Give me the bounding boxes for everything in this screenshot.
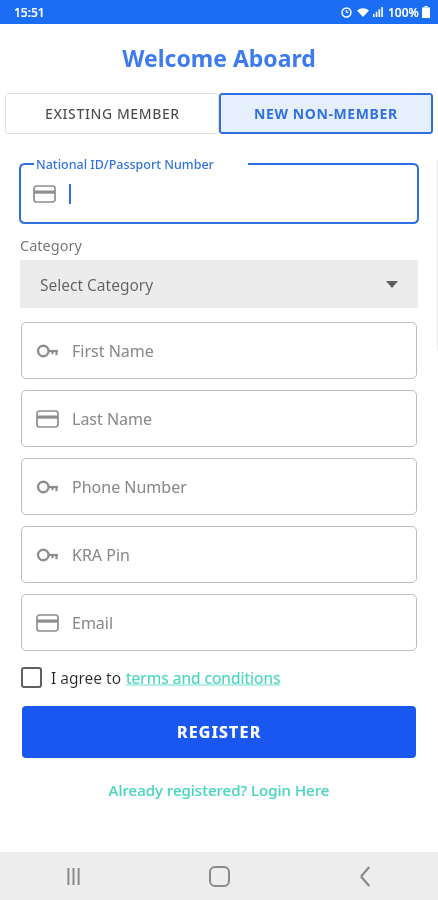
staticText: NEW NON-MEMBER: [254, 104, 398, 123]
button[interactable]: Last Name: [21, 390, 417, 447]
button[interactable]: REGISTER: [22, 706, 416, 758]
staticText: REGISTER: [177, 721, 262, 743]
staticText: Email: [72, 612, 114, 634]
staticText: Phone Number: [72, 476, 187, 498]
staticText: First Name: [72, 340, 154, 362]
staticText: Welcome Aboard: [0, 42, 438, 73]
staticText: Select Category: [40, 274, 154, 295]
button[interactable]: I agree to: [22, 667, 281, 688]
button[interactable]: First Name: [21, 322, 417, 379]
button[interactable]: Select Category: [20, 260, 418, 308]
staticText: 100%: [388, 4, 419, 20]
button[interactable]: EXISTING MEMBER: [5, 93, 219, 134]
button[interactable]: Already registered? Login Here: [0, 780, 438, 800]
button[interactable]: National ID/Passport Number: [20, 155, 418, 223]
button[interactable]: terms and conditions: [126, 667, 281, 688]
button[interactable]: Back: [292, 852, 438, 900]
staticText: KRA Pin: [72, 544, 130, 566]
button[interactable]: NEW NON-MEMBER: [219, 93, 433, 134]
staticText: Category: [20, 235, 82, 255]
button[interactable]: Recent apps: [0, 852, 146, 900]
staticText: 15:51: [14, 4, 45, 20]
staticText: Last Name: [72, 408, 153, 430]
staticText: National ID/Passport Number: [36, 156, 214, 173]
button[interactable]: Phone Number: [21, 458, 417, 515]
button[interactable]: KRA Pin: [21, 526, 417, 583]
button[interactable]: Home: [146, 852, 292, 900]
staticText: EXISTING MEMBER: [45, 104, 180, 123]
button[interactable]: Email: [21, 594, 417, 651]
staticText: I agree to: [51, 667, 126, 688]
